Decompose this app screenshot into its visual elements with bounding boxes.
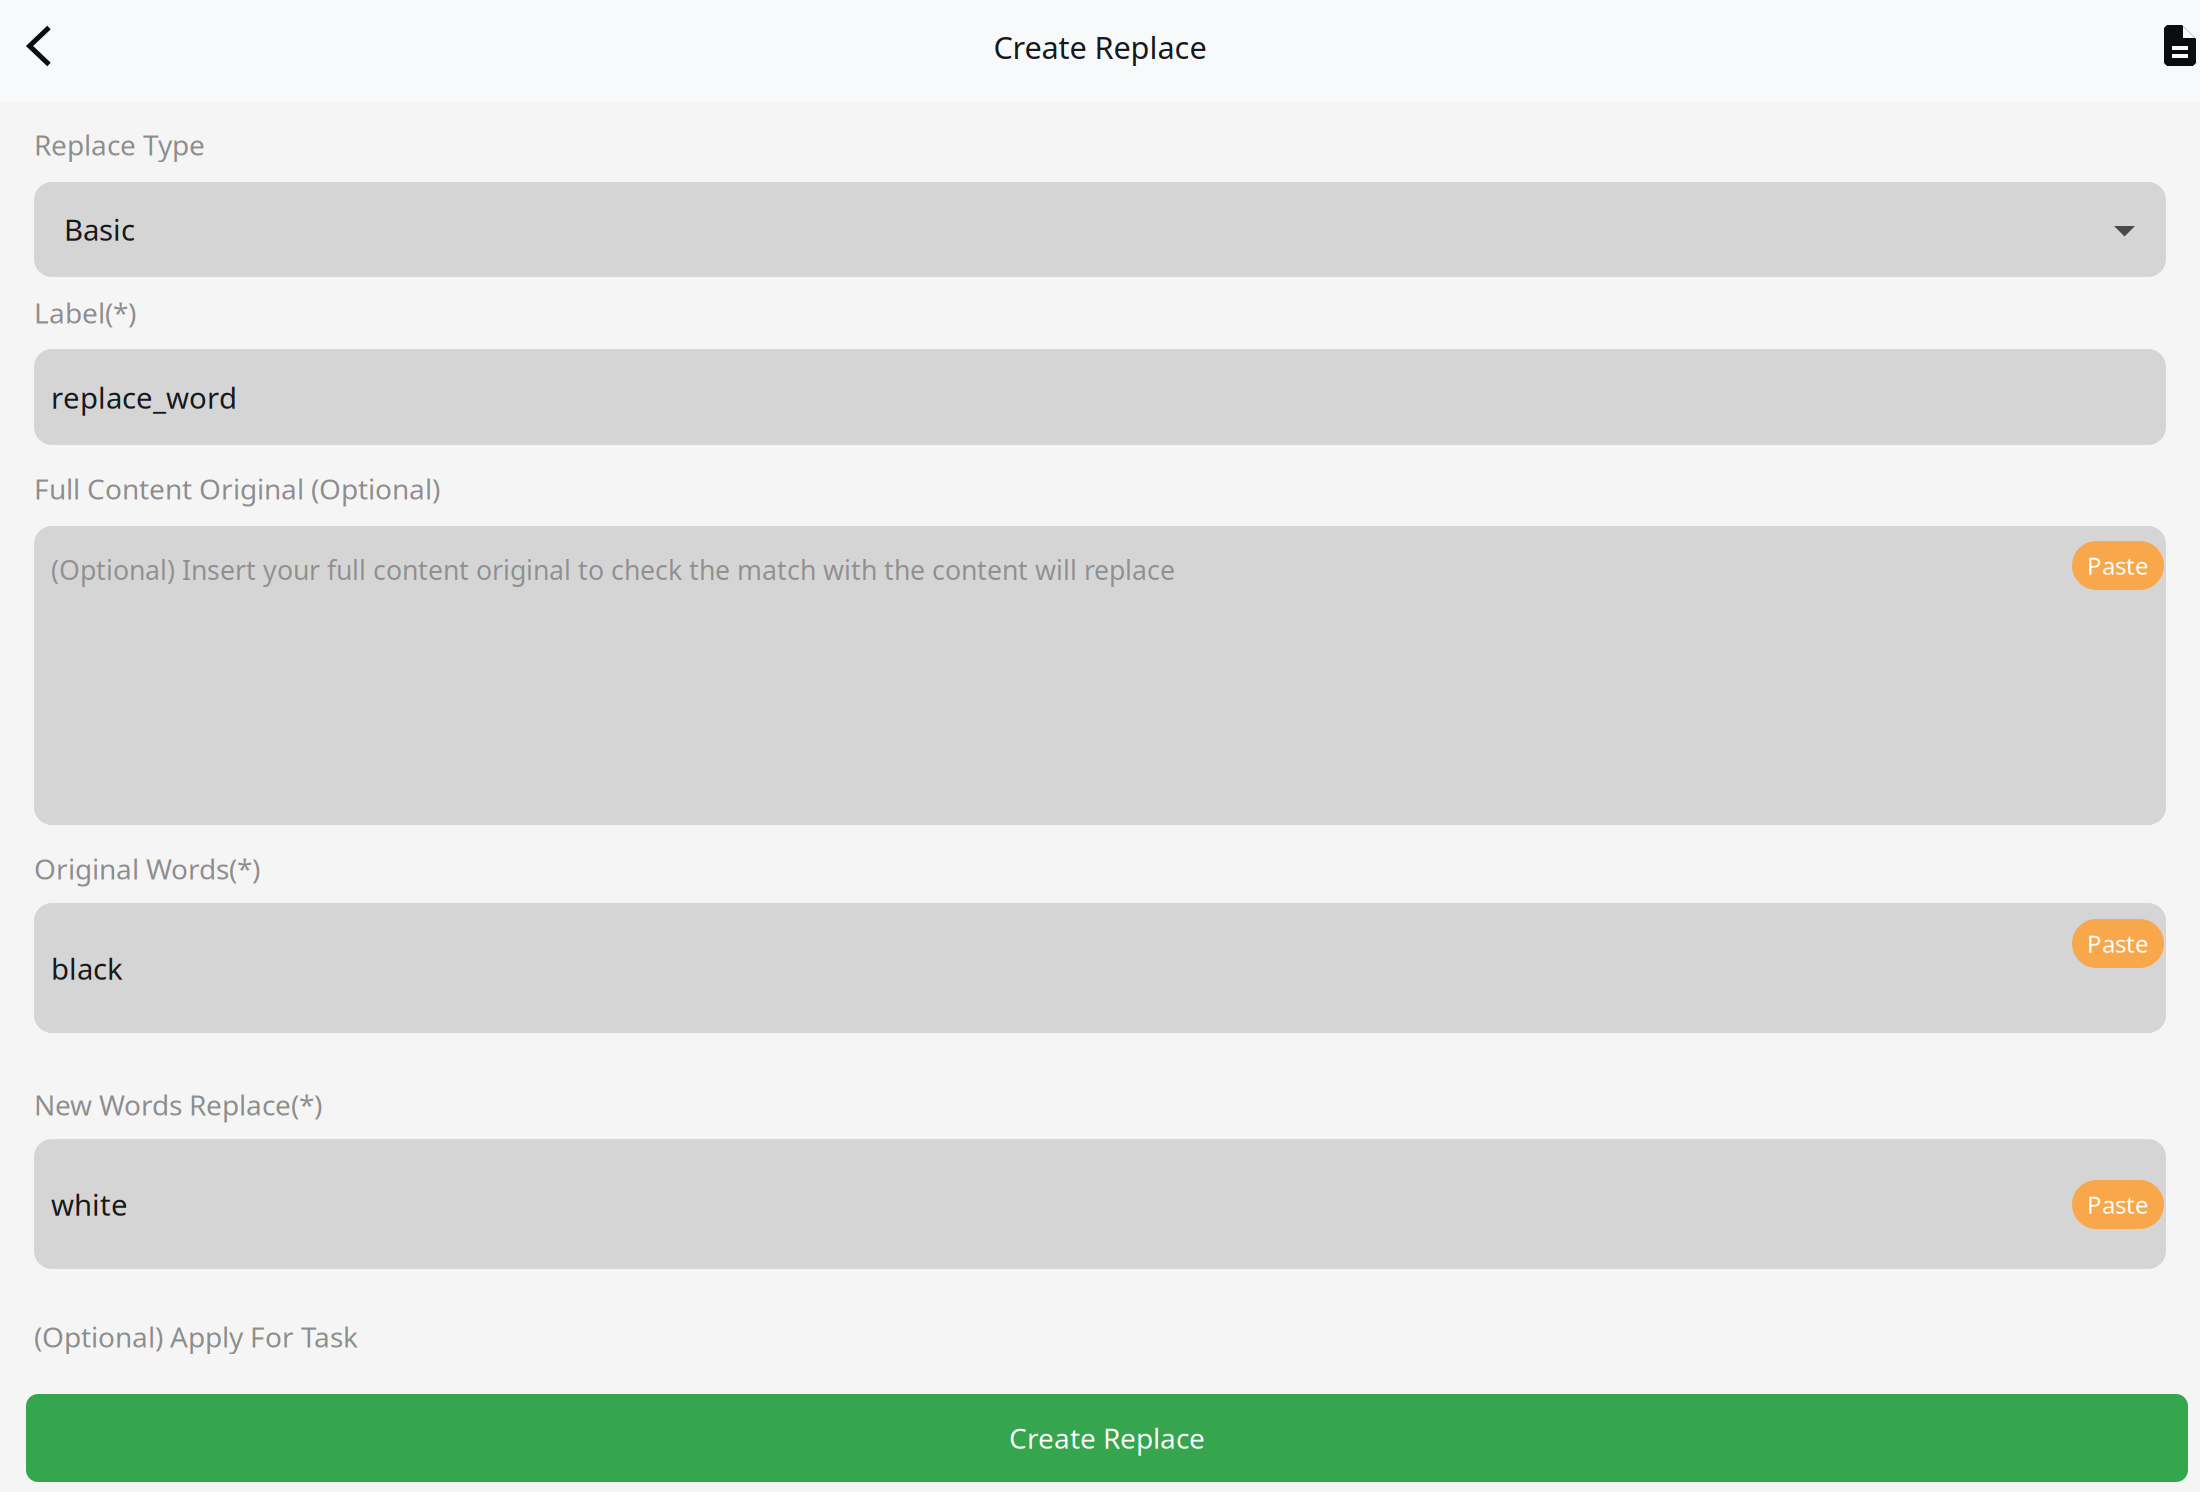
staticText: Label(*) xyxy=(34,294,136,331)
button[interactable]: black xyxy=(34,903,2166,1033)
staticText: Paste xyxy=(2087,928,2149,959)
button[interactable]: (Optional) Insert your full content orig… xyxy=(34,526,2166,825)
button[interactable]: Paste xyxy=(2072,541,2164,590)
button[interactable]: Instructions xyxy=(2114,0,2200,102)
button[interactable]: white xyxy=(34,1139,2166,1269)
staticText: (Optional) Apply For Task xyxy=(34,1318,358,1355)
staticText: Full Content Original (Optional) xyxy=(34,470,440,507)
staticText: Basic xyxy=(64,210,135,249)
staticText: black xyxy=(51,949,123,988)
button[interactable]: Paste xyxy=(2072,919,2164,968)
staticText: replace_word xyxy=(51,378,237,417)
button[interactable]: Back xyxy=(0,0,86,102)
button[interactable]: Basic xyxy=(34,182,2166,277)
staticText: white xyxy=(51,1185,128,1224)
staticText: Original Words(*) xyxy=(34,850,260,887)
staticText: Paste xyxy=(2087,1189,2149,1220)
staticText: Paste xyxy=(2087,550,2149,581)
button[interactable]: replace_word xyxy=(34,349,2166,445)
staticText: Create Replace xyxy=(993,27,1206,67)
staticText: Create Replace xyxy=(1009,1419,1205,1457)
button[interactable]: Paste xyxy=(2072,1180,2164,1229)
staticText: New Words Replace(*) xyxy=(34,1086,322,1123)
staticText: Replace Type xyxy=(34,126,205,163)
button[interactable]: Create Replace xyxy=(26,1394,2188,1482)
staticText: (Optional) Insert your full content orig… xyxy=(51,552,1175,587)
